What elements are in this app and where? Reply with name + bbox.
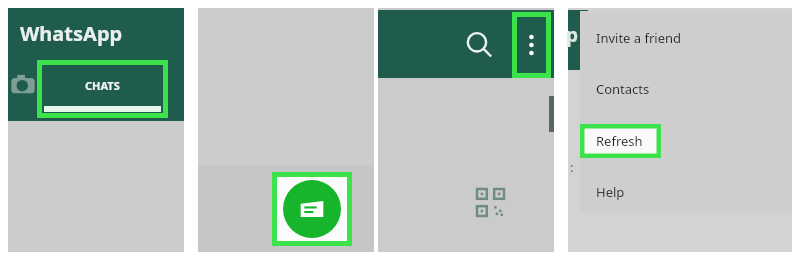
other: QR code: [477, 189, 504, 216]
button[interactable]: More options: [512, 12, 551, 78]
staticText: WhatsApp: [20, 20, 123, 47]
staticText: p: [566, 22, 579, 48]
staticText: Contacts: [596, 80, 650, 98]
other: Camera: [10, 74, 36, 96]
button[interactable]: Refresh: [580, 124, 776, 158]
button[interactable]: Help: [580, 175, 776, 209]
staticText: Help: [596, 183, 625, 201]
staticText: Invite a friend: [596, 29, 682, 47]
button[interactable]: New chat: [272, 172, 352, 246]
button[interactable]: Search: [462, 28, 496, 62]
button[interactable]: CHATS: [37, 60, 168, 118]
button[interactable]: Contacts: [580, 72, 776, 106]
staticText: Refresh: [596, 132, 643, 150]
staticText: Refresh: [596, 132, 643, 150]
button[interactable]: Refresh highlighted: [580, 124, 661, 158]
staticText: CHATS: [85, 78, 120, 93]
button[interactable]: Invite a friend: [580, 21, 776, 55]
staticText: :: [570, 158, 574, 176]
